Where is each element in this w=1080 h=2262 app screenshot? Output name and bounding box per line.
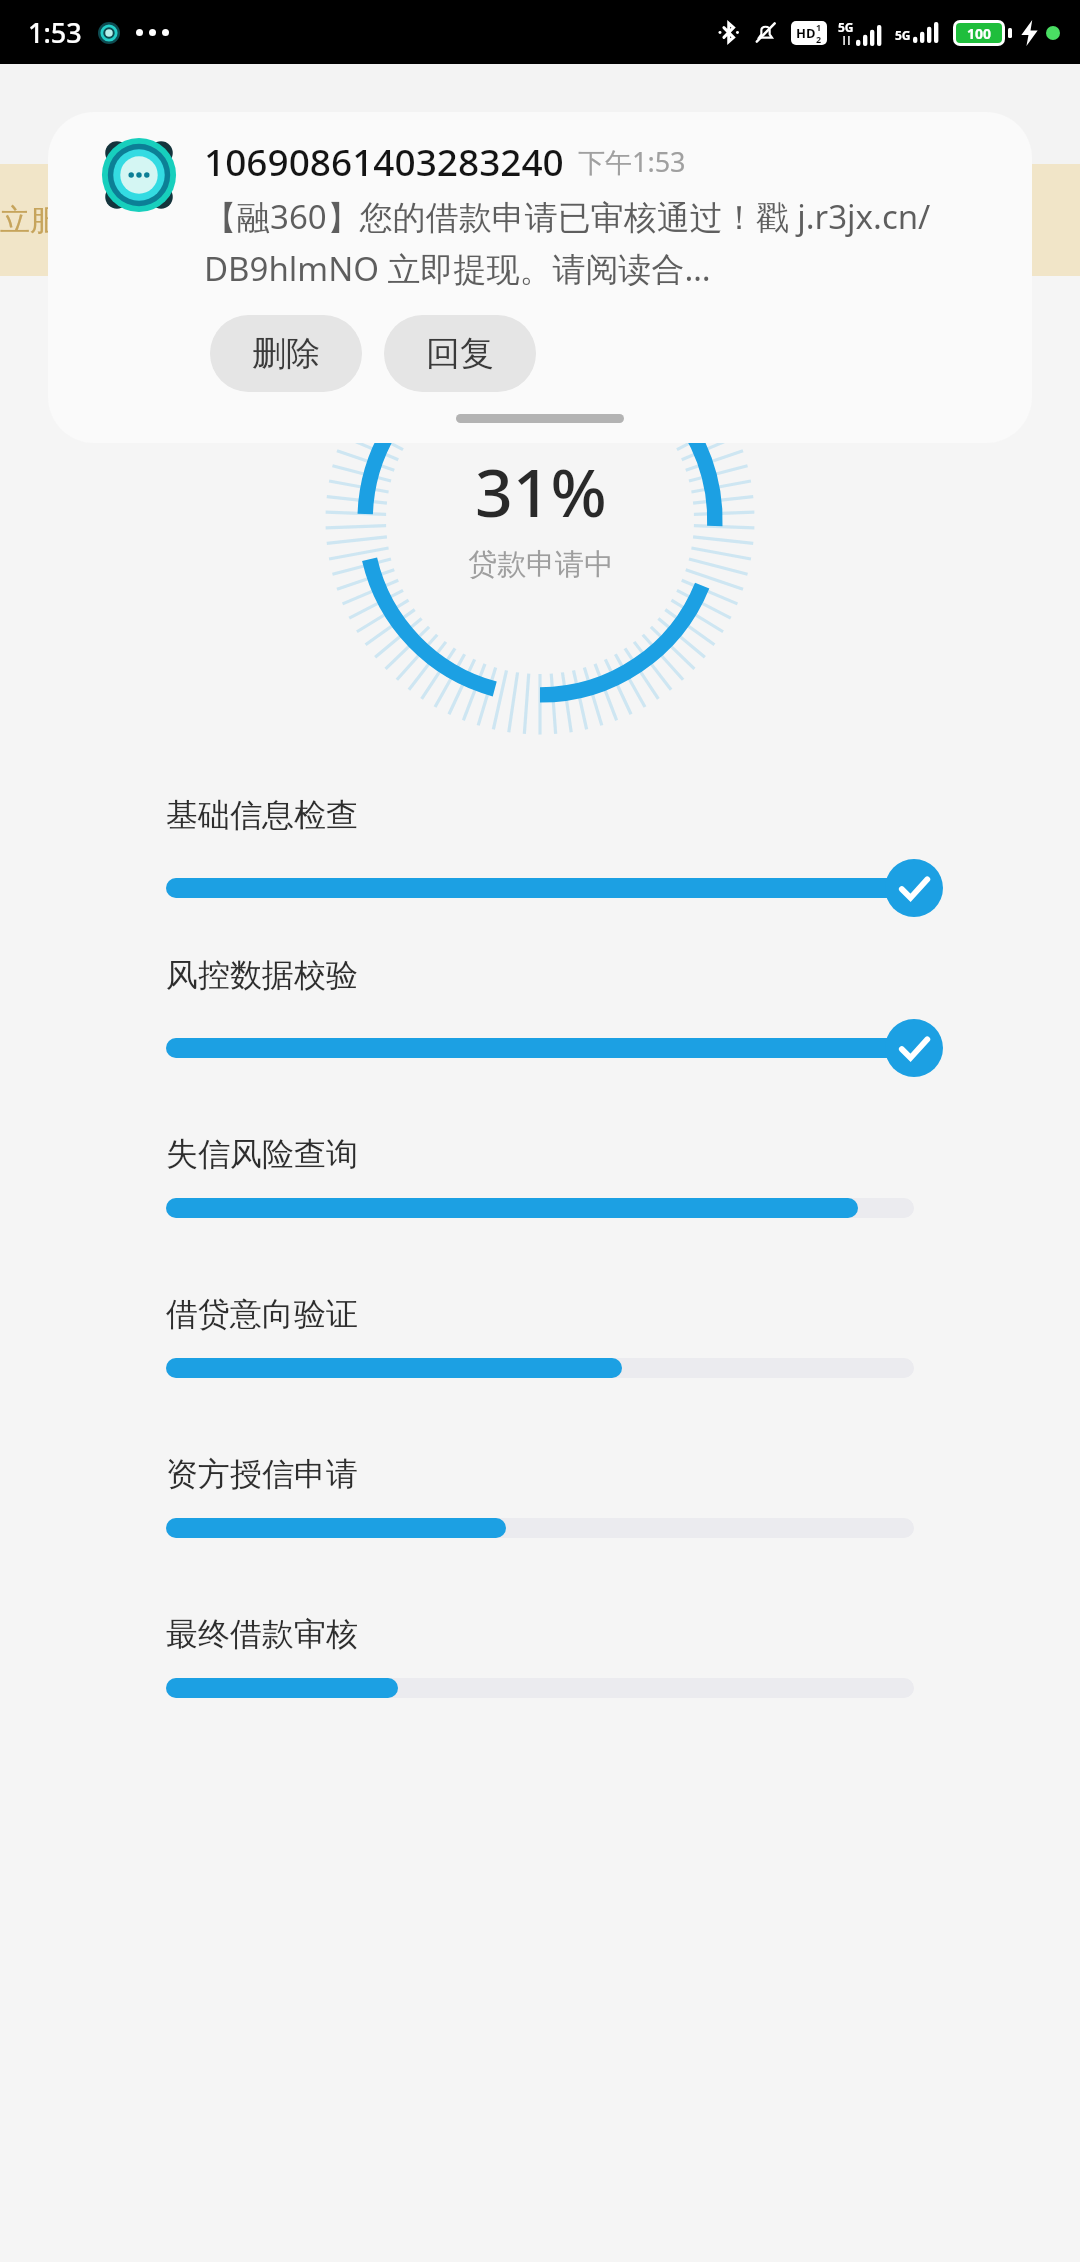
staticText: 最终借款审核 xyxy=(166,1614,358,1654)
button[interactable]: 回复 xyxy=(384,315,536,392)
button[interactable]: 借贷意向验证 xyxy=(0,1256,1080,1416)
button[interactable]: 最终借款审核 xyxy=(0,1576,1080,1736)
staticText: 1 xyxy=(816,21,822,33)
button[interactable]: 风控数据校验 xyxy=(0,936,1080,1096)
staticText: 资方授信申请 xyxy=(166,1454,358,1494)
staticText: 风控数据校验 xyxy=(166,955,358,995)
staticText: 立服务由第三方金融机构提供请仔细阅读 xyxy=(0,201,540,239)
staticText: 10690861403283240 xyxy=(204,136,564,186)
staticText: 回复 xyxy=(426,332,494,375)
button[interactable]: 资方授信申请 xyxy=(0,1416,1080,1576)
staticText: 失信风险查询 xyxy=(166,1134,358,1174)
button[interactable]: 失信风险查询 xyxy=(0,1096,1080,1256)
staticText: 删除 xyxy=(252,332,320,375)
staticText: 【融360】您的借款申请已审核通过！戳 j.r3jx.cn/DB9hlmNO 立… xyxy=(204,194,1004,291)
staticText: 贷款申请中 xyxy=(468,546,613,583)
staticText: 5G xyxy=(838,19,854,35)
staticText: 2 xyxy=(816,33,822,45)
staticText: 100 xyxy=(967,24,992,43)
other: Completed xyxy=(885,1019,943,1077)
other: Message app icon xyxy=(100,136,178,214)
other: Completed xyxy=(885,859,943,917)
button[interactable]: 删除 xyxy=(210,315,362,392)
button[interactable]: 基础信息检查 xyxy=(0,776,1080,936)
staticText: 31% xyxy=(475,446,607,536)
staticText: 基础信息检查 xyxy=(166,795,358,835)
staticText: HD xyxy=(796,24,816,42)
staticText: 5G xyxy=(895,27,911,43)
staticText: 借贷意向验证 xyxy=(166,1294,358,1334)
staticText: 下午1:53 xyxy=(578,143,686,180)
button[interactable]: Message app icon xyxy=(48,112,1032,443)
staticText: 1:53 xyxy=(28,14,82,51)
